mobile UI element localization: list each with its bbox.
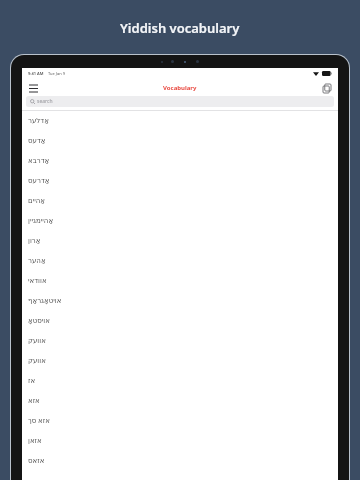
button[interactable]: אַדרבא [22,151,338,171]
button[interactable]: אז [22,371,338,391]
staticText: אַהער [28,257,46,265]
staticText: 9:41 AM [28,71,44,76]
button[interactable]: אזאס [22,451,338,471]
staticText: אַהיימגיין [28,217,54,225]
button[interactable]: אזא סך [22,411,338,431]
button[interactable]: אויסטאָ [22,311,338,331]
staticText: אַהיים [28,197,46,205]
staticText: אזא סך [28,416,50,426]
button[interactable]: אזא [22,391,338,411]
staticText: אַרון [28,237,41,245]
staticText: אויסטאָ [28,317,50,325]
staticText: אז [28,377,36,385]
button[interactable]: אַדעס [22,131,338,151]
staticText: Tue Jan 9 [48,71,65,76]
button[interactable]: אוועק [22,351,338,371]
staticText: אַדרבא [28,157,50,165]
button[interactable]: Copy [320,81,334,95]
staticText: אוודאי [28,277,47,285]
button[interactable]: אוודאי [22,271,338,291]
staticText: Vocabulary [163,84,197,92]
button[interactable]: אויטאָגראַף [22,291,338,311]
staticText: אוועק [28,337,46,345]
staticText: אַדלער [28,117,49,125]
button[interactable]: אַהיים [22,191,338,211]
button[interactable]: אַהער [22,251,338,271]
staticText: אויטאָגראַף [28,297,62,305]
button[interactable]: אַהיימגיין [22,211,338,231]
button[interactable]: אַדרעס [22,171,338,191]
button[interactable]: אוועק [22,331,338,351]
staticText: אזאן [28,437,42,445]
staticText: אַדעס [28,137,46,145]
staticText: אַדרעס [28,177,50,185]
staticText: Yiddish vocabulary [120,19,240,37]
staticText: אזאס [28,457,45,465]
button[interactable]: אַדלער [22,111,338,131]
button[interactable]: אַרון [22,231,338,251]
staticText: search [37,98,53,105]
staticText: אוועק [28,357,46,365]
button[interactable]: search [26,96,334,107]
staticText: אזא [28,397,40,405]
button[interactable]: אזאן [22,431,338,451]
button[interactable]: Menu [26,81,40,95]
